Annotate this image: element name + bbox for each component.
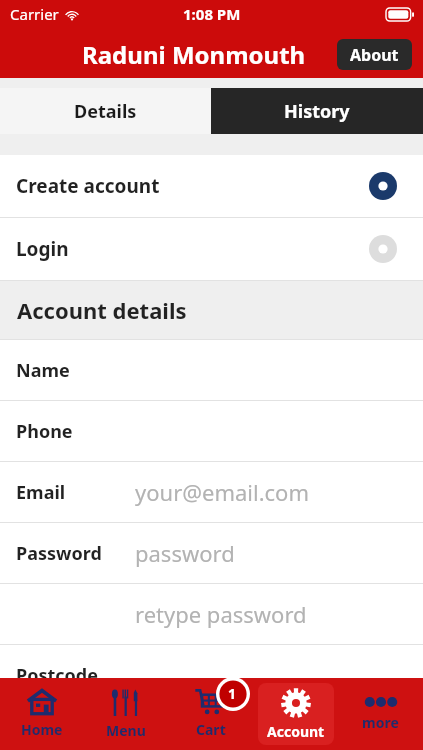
- staticText: Phone: [16, 419, 73, 444]
- button[interactable]: Details: [0, 88, 211, 134]
- button[interactable]: retype password: [0, 584, 423, 644]
- button[interactable]: Menu: [84, 678, 168, 750]
- staticText: Details: [74, 99, 137, 124]
- staticText: Cart: [196, 720, 226, 739]
- staticText: more: [362, 713, 399, 732]
- staticText: password: [135, 538, 235, 568]
- staticText: Email: [16, 480, 66, 505]
- staticText: Postcode: [16, 663, 98, 688]
- staticText: Home: [21, 720, 63, 739]
- staticText: Create account: [16, 173, 160, 199]
- staticText: retype password: [135, 599, 307, 629]
- button[interactable]: Login: [0, 218, 423, 280]
- staticText: Account: [267, 722, 325, 741]
- button[interactable]: Cart: [168, 678, 253, 750]
- staticText: Account details: [17, 295, 187, 325]
- button[interactable]: more: [338, 678, 423, 750]
- button[interactable]: Name: [0, 340, 423, 400]
- staticText: History: [284, 99, 350, 124]
- button[interactable]: Email: [0, 462, 423, 522]
- staticText: 1: [228, 684, 237, 703]
- staticText: Carrier: [10, 4, 59, 24]
- button[interactable]: Create account: [0, 155, 423, 217]
- button[interactable]: Account: [258, 683, 334, 745]
- staticText: Name: [16, 358, 70, 383]
- staticText: About: [350, 44, 399, 66]
- button[interactable]: Phone: [0, 401, 423, 461]
- button[interactable]: Postcode: [0, 645, 423, 705]
- button[interactable]: About: [337, 39, 412, 70]
- staticText: Raduni Monmouth: [82, 38, 306, 71]
- staticText: Menu: [106, 721, 146, 740]
- staticText: your@email.com: [135, 477, 309, 507]
- staticText: 1:08 PM: [183, 4, 241, 24]
- staticText: Password: [16, 541, 102, 566]
- button[interactable]: History: [211, 88, 423, 134]
- button[interactable]: Password: [0, 523, 423, 583]
- button[interactable]: Home: [0, 678, 84, 750]
- staticText: Login: [16, 236, 69, 262]
